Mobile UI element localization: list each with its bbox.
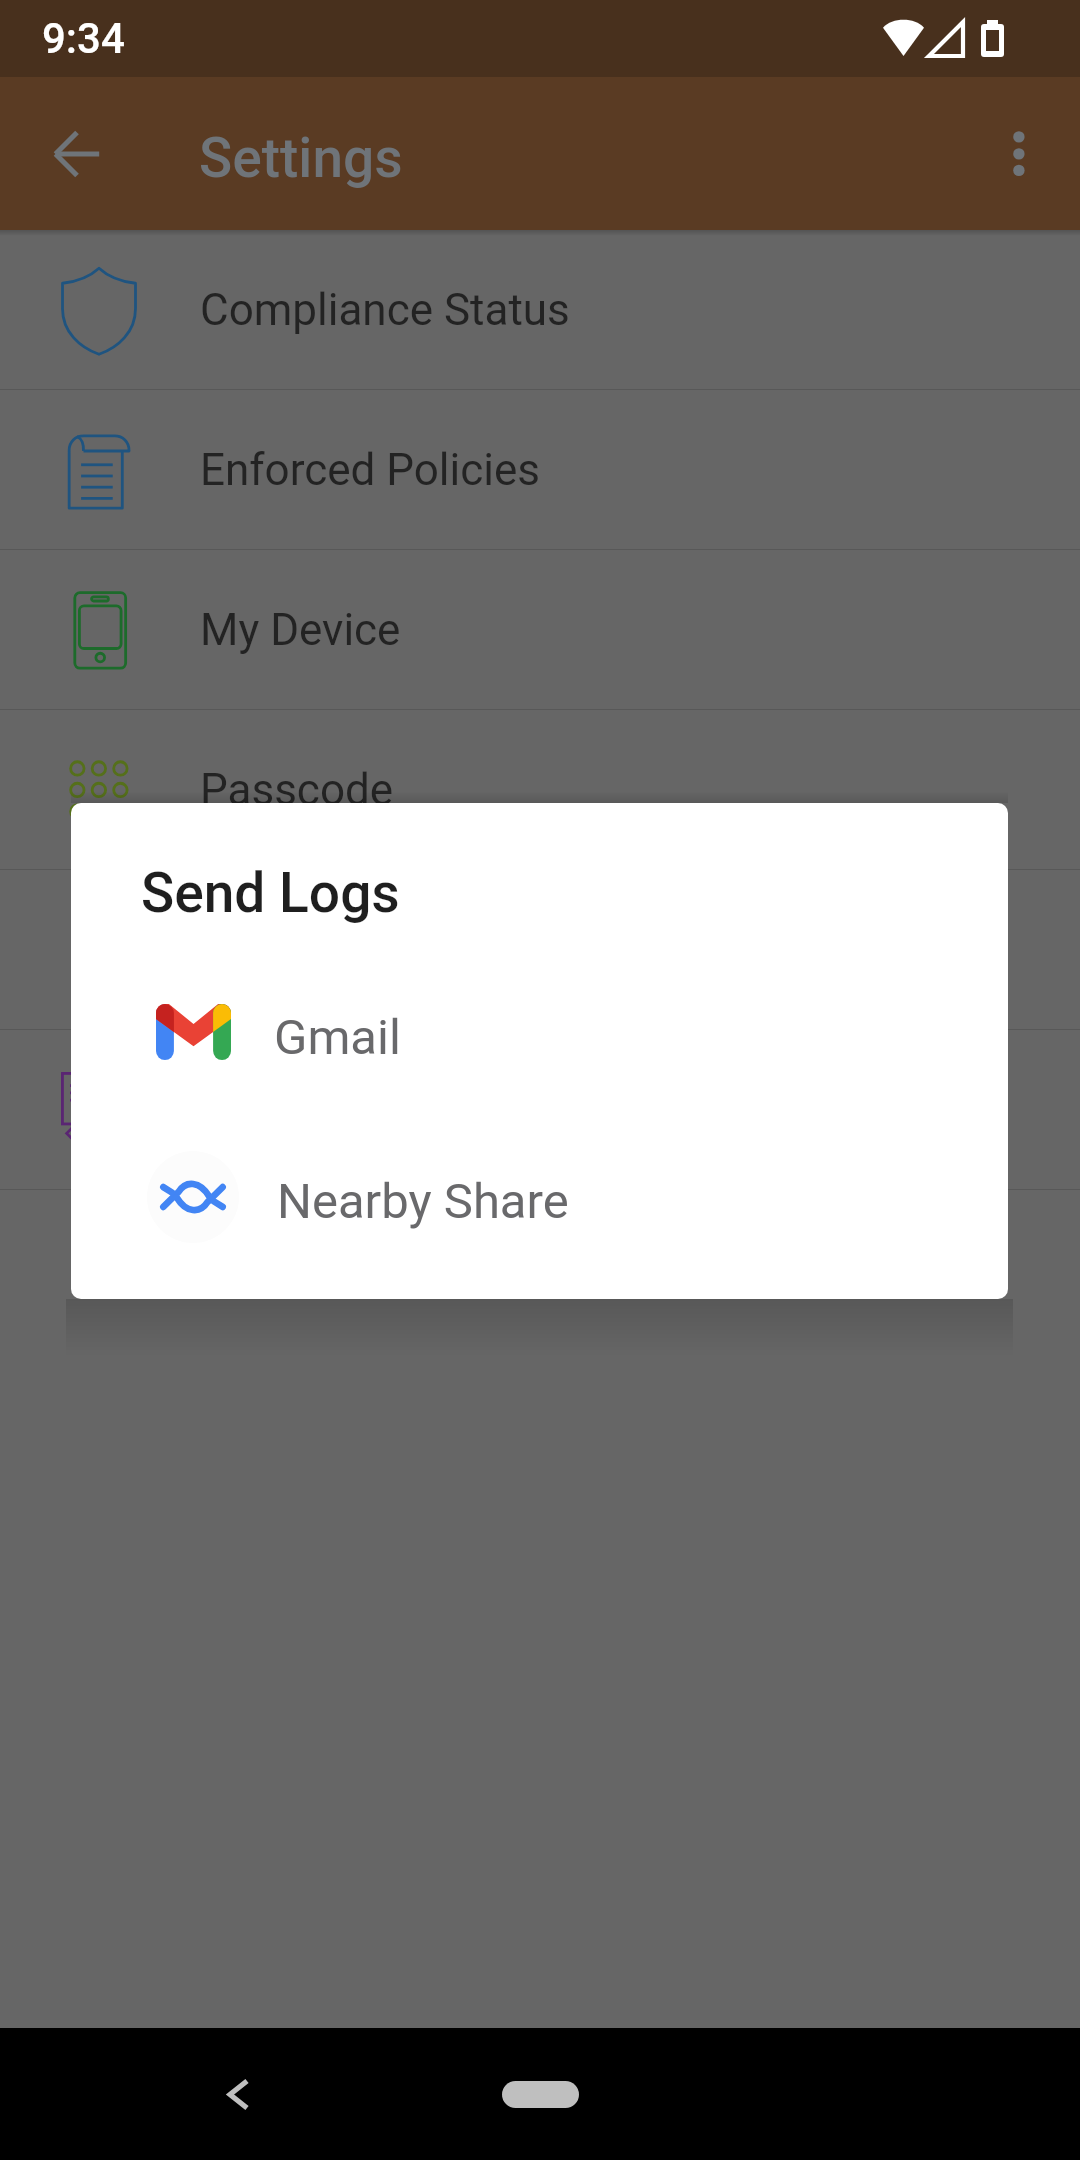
button[interactable]: Enforced Policies (0, 390, 1080, 549)
staticText: Compliance Status (200, 284, 570, 336)
staticText: Enforced Policies (200, 444, 541, 496)
button[interactable]: Nearby Share (71, 1132, 1008, 1262)
staticText: Gmail (274, 1009, 401, 1066)
staticText: Passcode (200, 764, 394, 816)
button[interactable]: Apps (0, 870, 1080, 1029)
button[interactable]: Certificates (0, 1030, 1080, 1189)
button[interactable]: Passcode (0, 710, 1080, 869)
button[interactable]: Compliance Status (0, 230, 1080, 389)
staticText: My Device (200, 604, 401, 656)
button[interactable]: Back (208, 2068, 270, 2130)
button[interactable]: Navigate up (8, 106, 104, 202)
staticText: Send Logs (141, 861, 400, 925)
button[interactable]: More options (971, 106, 1067, 202)
staticText: Nearby Share (277, 1173, 569, 1230)
button[interactable]: Home (502, 2081, 579, 2108)
staticText: Settings (199, 126, 403, 190)
button[interactable]: My Device (0, 550, 1080, 709)
staticText: 9:34 (42, 14, 125, 63)
button[interactable]: Gmail (71, 972, 1008, 1102)
